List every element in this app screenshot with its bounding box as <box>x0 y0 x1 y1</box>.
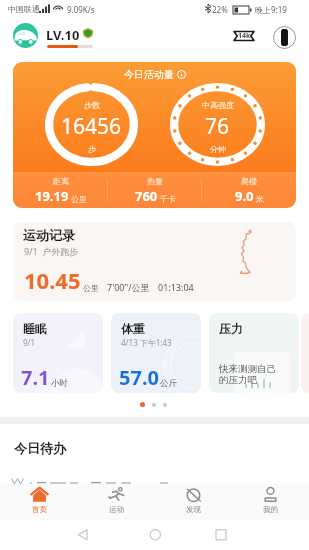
staticText: 中国联通 <box>8 4 40 14</box>
staticText: 睡眠 <box>23 321 47 336</box>
staticText: 快来测测自己 的压力吧 <box>219 363 276 386</box>
staticText: 公里 <box>71 194 87 204</box>
staticText: 公里 <box>83 283 99 293</box>
staticText: 今日待办 <box>14 440 66 456</box>
staticText: 9.09K/s <box>67 4 95 15</box>
staticText: 中高强度 <box>202 100 234 110</box>
staticText: 运动 <box>109 505 124 514</box>
button[interactable]: 运动 <box>78 484 155 520</box>
staticText: 76 <box>205 112 230 141</box>
staticText: 22% <box>212 4 228 15</box>
button[interactable]: 睡眠 <box>13 313 103 393</box>
button[interactable]: 今日活动量 <box>13 62 296 208</box>
staticText: 我的 <box>263 505 278 514</box>
button[interactable]: 压力 <box>209 313 299 393</box>
staticText: 01:13:04 <box>158 281 194 293</box>
staticText: 9/1 户外跑步 <box>24 245 79 257</box>
button[interactable]: Profile <box>13 23 38 48</box>
button[interactable]: 我的 <box>232 484 309 520</box>
staticText: 公斤 <box>160 378 177 389</box>
staticText: 距离 <box>53 176 69 186</box>
staticText: 16456 <box>61 112 122 141</box>
button[interactable]: 发现 <box>155 484 232 520</box>
button[interactable]: 运动记录 <box>13 222 296 301</box>
staticText: LV.10 <box>46 26 80 44</box>
staticText: 14k <box>238 31 251 41</box>
staticText: 10.45 <box>24 265 81 295</box>
staticText: 米 <box>256 194 264 204</box>
staticText: 9/1 <box>23 337 36 348</box>
staticText: 步数 <box>84 100 100 110</box>
staticText: 发现 <box>186 505 201 514</box>
staticText: 19.19 <box>35 187 69 205</box>
staticText: 分钟 <box>210 144 226 154</box>
staticText: 7.1 <box>21 364 50 391</box>
staticText: 步 <box>88 144 96 154</box>
button[interactable]: 首页 <box>0 484 78 520</box>
staticText: 压力 <box>219 321 243 336</box>
button[interactable]: Devices <box>273 26 296 49</box>
staticText: 今日活动量 <box>124 68 174 81</box>
staticText: 爬楼 <box>241 176 257 186</box>
staticText: 首页 <box>32 505 47 514</box>
staticText: 9.0 <box>235 187 254 205</box>
staticText: 晚上9:19 <box>255 4 287 15</box>
staticText: 760 <box>135 187 158 205</box>
staticText: 运动记录 <box>23 227 75 243</box>
staticText: 57.0 <box>119 364 159 391</box>
staticText: 7'00"/公里 <box>107 281 150 293</box>
staticText: 千卡 <box>160 194 176 204</box>
button[interactable]: 体重 <box>111 313 201 393</box>
staticText: 4/13 下午1:43 <box>121 337 172 348</box>
staticText: 体重 <box>121 321 145 336</box>
staticText: 小时 <box>51 378 68 389</box>
button[interactable]: Coupons <box>234 28 254 44</box>
staticText: 热量 <box>147 176 163 186</box>
